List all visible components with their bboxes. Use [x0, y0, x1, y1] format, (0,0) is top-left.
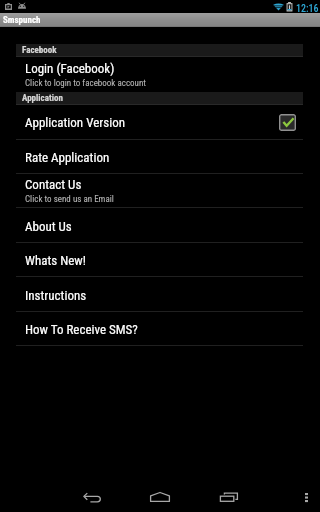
- button[interactable]: More options: [292, 480, 320, 504]
- staticText: Login (Facebook): [25, 61, 115, 76]
- staticText: Smspunch: [3, 15, 41, 26]
- button[interactable]: Instructions: [0, 277, 320, 311]
- staticText: 12:16: [296, 3, 319, 15]
- staticText: Contact Us: [25, 177, 82, 192]
- staticText: How To Receive SMS?: [25, 322, 138, 337]
- button[interactable]: Recent apps: [212, 480, 246, 504]
- button[interactable]: Contact Us: [0, 174, 320, 207]
- button[interactable]: Back: [75, 480, 109, 504]
- staticText: Application: [22, 93, 63, 104]
- staticText: Facebook: [22, 45, 57, 56]
- button[interactable]: How To Receive SMS?: [0, 312, 320, 345]
- button[interactable]: About Us: [0, 208, 320, 242]
- button[interactable]: Application Version: [0, 105, 320, 139]
- staticText: Instructions: [25, 288, 87, 303]
- button[interactable]: Home: [143, 480, 177, 504]
- button[interactable]: Rate Application: [0, 140, 320, 173]
- button[interactable]: Whats New!: [0, 243, 320, 276]
- staticText: Rate Application: [25, 150, 110, 165]
- staticText: Click to login to facebook account: [25, 78, 146, 89]
- staticText: Application Version: [25, 115, 125, 130]
- button[interactable]: Login (Facebook): [0, 57, 320, 92]
- staticText: Whats New!: [25, 253, 86, 268]
- staticText: About Us: [25, 219, 72, 234]
- staticText: Click to send us an Email: [25, 194, 114, 205]
